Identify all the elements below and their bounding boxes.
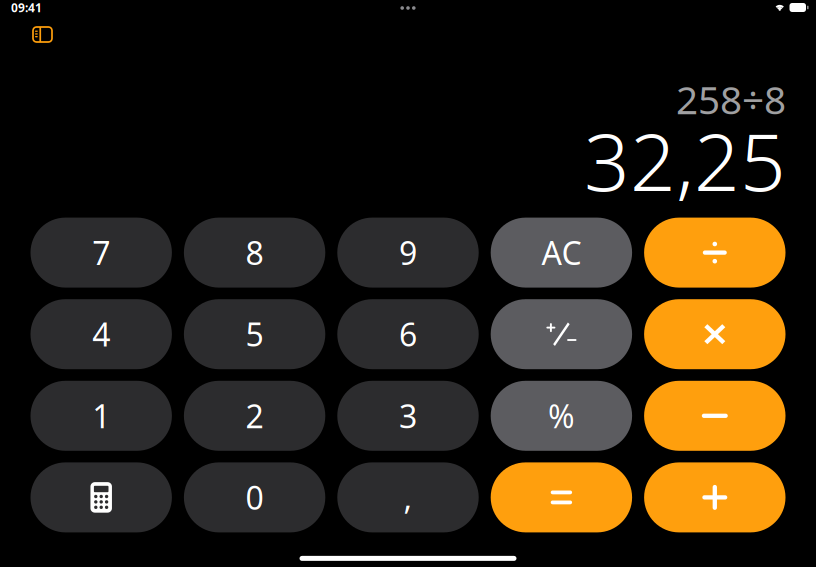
button[interactable]: 6 bbox=[337, 299, 479, 369]
staticText: , bbox=[403, 476, 412, 519]
button[interactable]: AC bbox=[491, 218, 632, 288]
staticText: 8 bbox=[246, 231, 264, 274]
staticText: 6 bbox=[399, 313, 417, 355]
button[interactable]: Equals bbox=[491, 462, 632, 532]
button[interactable]: Multiply bbox=[644, 299, 785, 369]
button[interactable]: Toggle sign bbox=[491, 299, 632, 369]
button[interactable]: Calculator mode bbox=[30, 462, 172, 532]
staticText: AC bbox=[541, 231, 581, 274]
button[interactable]: Subtract bbox=[644, 381, 785, 451]
button[interactable]: 3 bbox=[337, 381, 479, 451]
button[interactable]: Add bbox=[644, 462, 785, 532]
button[interactable]: 7 bbox=[30, 218, 172, 288]
staticText: 4 bbox=[92, 313, 110, 355]
staticText: 0 bbox=[246, 476, 264, 519]
button[interactable]: 8 bbox=[184, 218, 325, 288]
button[interactable]: 9 bbox=[337, 218, 479, 288]
staticText: 32,25 bbox=[584, 107, 786, 213]
staticText: 7 bbox=[92, 231, 110, 274]
staticText: 09:41 bbox=[11, 0, 42, 15]
staticText: 9 bbox=[399, 231, 417, 274]
staticText: 3 bbox=[399, 395, 417, 437]
button[interactable]: 5 bbox=[184, 299, 325, 369]
button[interactable]: % bbox=[491, 381, 632, 451]
button[interactable]: , bbox=[337, 462, 479, 532]
staticText: 5 bbox=[246, 313, 264, 355]
staticText: 1 bbox=[92, 395, 110, 437]
button[interactable]: 2 bbox=[184, 381, 325, 451]
button[interactable]: Show sidebar bbox=[26, 20, 59, 49]
button[interactable]: 0 bbox=[184, 462, 325, 532]
staticText: % bbox=[548, 395, 575, 437]
button[interactable]: 4 bbox=[30, 299, 172, 369]
staticText: 258÷8 bbox=[676, 74, 786, 125]
button[interactable]: 1 bbox=[30, 381, 172, 451]
staticText: 2 bbox=[246, 395, 264, 437]
button[interactable]: Divide bbox=[644, 218, 785, 288]
